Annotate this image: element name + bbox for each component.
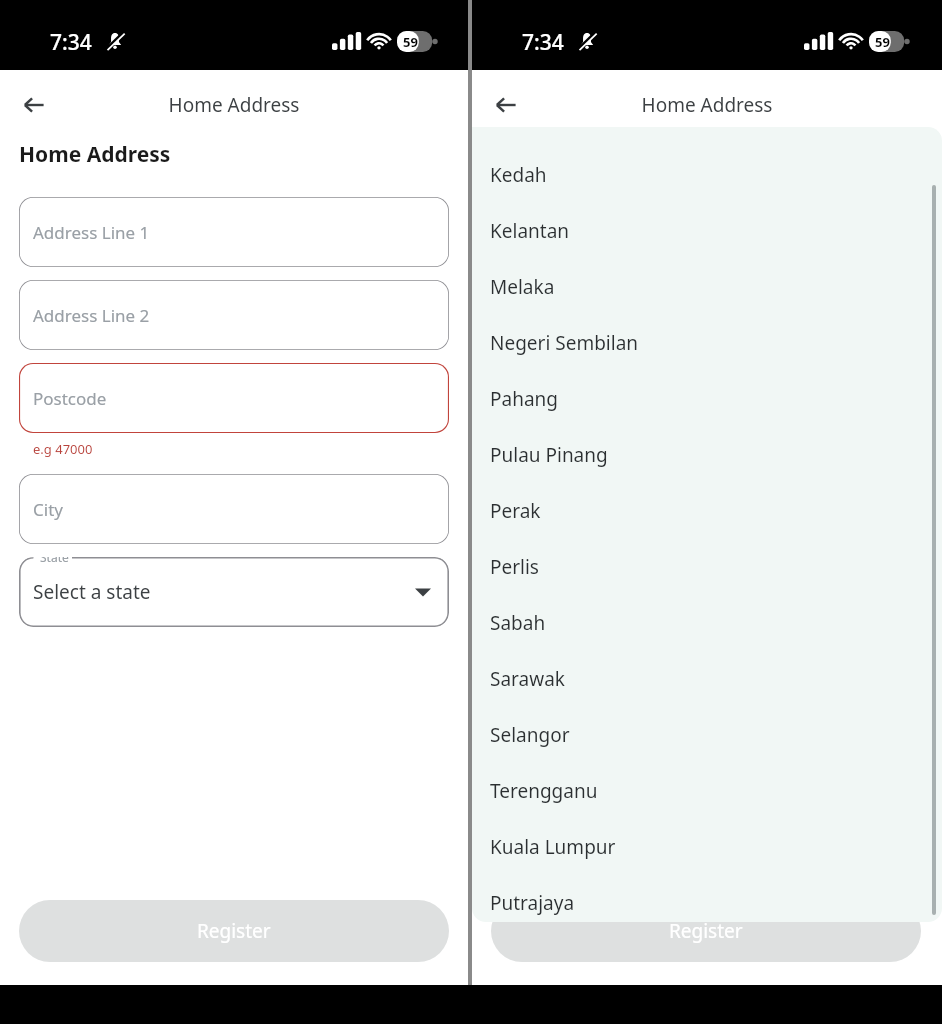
staticText: Perlis xyxy=(490,554,539,580)
staticText: Negeri Sembilan xyxy=(490,330,639,356)
staticText: Home Address xyxy=(0,92,468,118)
button[interactable]: City xyxy=(19,474,449,544)
staticText: Home Address xyxy=(472,92,942,118)
button[interactable]: Perlis xyxy=(472,539,942,595)
staticText: City xyxy=(505,498,535,521)
button[interactable]: Register xyxy=(491,900,921,962)
staticText: 7:34 xyxy=(522,28,564,57)
staticText: Postcode xyxy=(505,387,579,410)
staticText: Home Address xyxy=(19,140,171,169)
button[interactable]: City xyxy=(491,474,923,544)
staticText: Selangor xyxy=(490,722,570,748)
staticText: Terengganu xyxy=(490,778,598,804)
staticText: Kuala Lumpur xyxy=(490,834,616,860)
staticText: Home Address xyxy=(491,140,643,169)
staticText: 59 xyxy=(875,33,890,51)
button[interactable]: Postcode xyxy=(19,363,449,433)
button[interactable]: Register xyxy=(19,900,449,962)
button[interactable]: Sarawak xyxy=(472,651,942,707)
button[interactable]: Kedah xyxy=(472,147,942,203)
button[interactable]: Kuala Lumpur xyxy=(472,819,942,875)
staticText: e.g 47000 xyxy=(33,440,93,458)
button[interactable]: Select a state xyxy=(491,557,923,627)
button[interactable]: Putrajaya xyxy=(472,875,942,922)
staticText: Perak xyxy=(490,498,541,524)
staticText: Postcode xyxy=(33,387,107,410)
staticText: Address Line 1 xyxy=(33,221,150,244)
staticText: Address Line 2 xyxy=(33,304,150,327)
staticText: Putrajaya xyxy=(490,890,575,916)
button[interactable]: Selangor xyxy=(472,707,942,763)
staticText: Sabah xyxy=(490,610,546,636)
button[interactable]: Pulau Pinang xyxy=(472,427,942,483)
button[interactable]: Select a state xyxy=(19,557,449,627)
staticText: Pulau Pinang xyxy=(490,442,608,468)
button[interactable]: Address Line 1 xyxy=(491,197,923,267)
staticText: State xyxy=(512,557,541,565)
staticText: Kedah xyxy=(490,162,547,188)
button[interactable]: Melaka xyxy=(472,259,942,315)
button[interactable]: Address Line 2 xyxy=(491,280,923,350)
button[interactable]: Back xyxy=(486,85,526,125)
staticText: 7:34 xyxy=(50,28,92,57)
button[interactable]: Address Line 1 xyxy=(19,197,449,267)
staticText: Register xyxy=(197,918,271,944)
button[interactable]: Negeri Sembilan xyxy=(472,315,942,371)
button[interactable]: Pahang xyxy=(472,371,942,427)
staticText: Pahang xyxy=(490,386,558,412)
staticText: 59 xyxy=(403,33,418,51)
staticText: Register xyxy=(669,918,743,944)
button[interactable]: Postcode xyxy=(491,363,923,433)
staticText: City xyxy=(33,498,63,521)
staticText: Sarawak xyxy=(490,666,565,692)
staticText: Melaka xyxy=(490,274,555,300)
staticText: Address Line 1 xyxy=(505,221,622,244)
button[interactable]: Terengganu xyxy=(472,763,942,819)
button[interactable]: Kelantan xyxy=(472,203,942,259)
staticText: Kelantan xyxy=(490,218,570,244)
staticText: State xyxy=(40,557,69,565)
button[interactable]: Address Line 2 xyxy=(19,280,449,350)
staticText: Select a state xyxy=(33,579,151,605)
staticText: e.g 47000 xyxy=(505,440,565,458)
button[interactable]: Back xyxy=(14,85,54,125)
button[interactable]: Perak xyxy=(472,483,942,539)
button[interactable]: Sabah xyxy=(472,595,942,651)
